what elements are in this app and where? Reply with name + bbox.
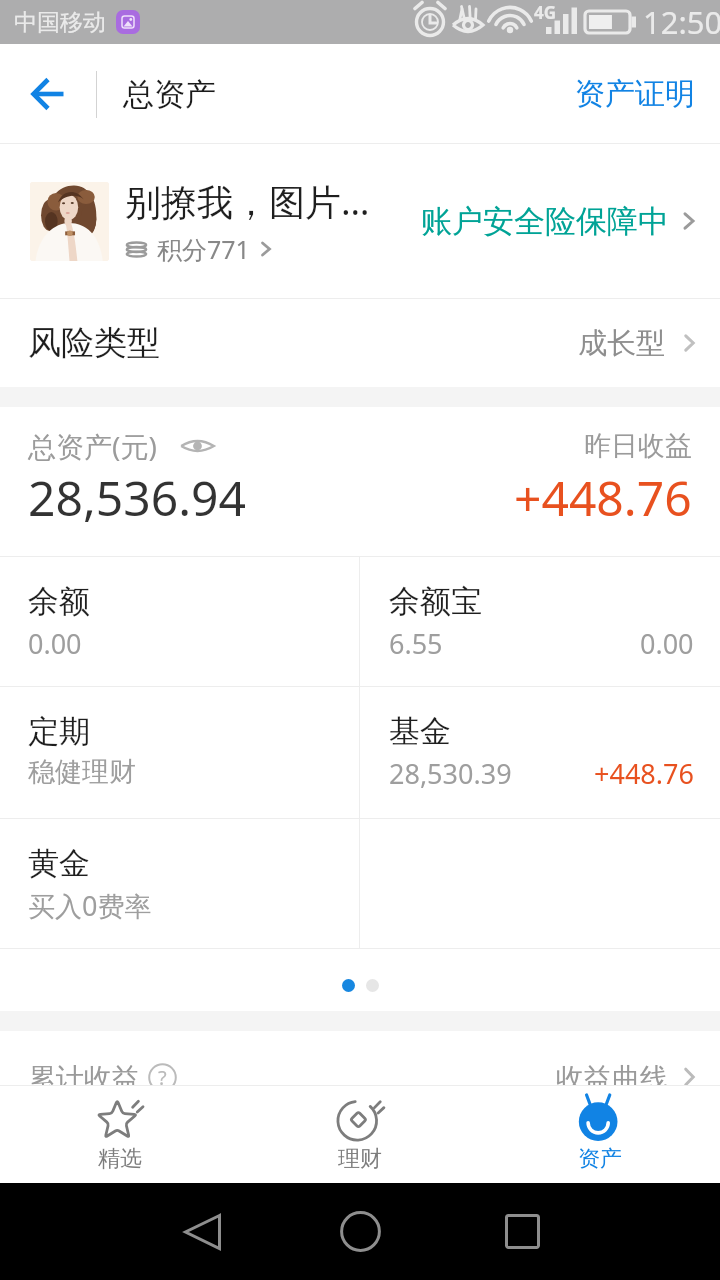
button[interactable]: 黄金 [0, 819, 359, 948]
button[interactable]: 基金 [360, 687, 720, 818]
button[interactable]: 资产证明 [555, 44, 720, 144]
staticText: 风险类型 [28, 322, 160, 364]
staticText: 累计收益 [28, 1061, 140, 1096]
staticText: 成长型 [578, 325, 665, 362]
button[interactable]: 余额 [0, 557, 359, 686]
staticText: ? [158, 1064, 167, 1091]
staticText: 理财 [338, 1145, 382, 1173]
staticText: 黄金 [28, 844, 90, 883]
staticText: 余额 [28, 582, 90, 621]
button[interactable]: Home [320, 1183, 400, 1280]
button[interactable]: 资产 [480, 1085, 720, 1183]
staticText: 0.00 [28, 625, 82, 662]
button[interactable]: 别撩我，图片… [0, 144, 720, 298]
button[interactable]: 余额宝 [360, 557, 720, 686]
staticText: 中国移动 [14, 8, 106, 37]
button[interactable]: 累计收益 [0, 1031, 720, 1121]
staticText: 账户安全险保障中 [421, 202, 669, 241]
button[interactable]: Recent apps [482, 1183, 562, 1280]
button[interactable]: Back [162, 1183, 242, 1280]
staticText: 昨日收益 [584, 429, 692, 463]
staticText: 积分771 [157, 232, 250, 266]
staticText: 28,530.39 [389, 755, 512, 792]
staticText: 精选 [98, 1145, 142, 1173]
staticText: 定期 [28, 712, 90, 751]
button[interactable]: 定期 [0, 687, 359, 818]
button[interactable]: Back [0, 44, 96, 144]
staticText: 总资产(元) [28, 427, 157, 465]
staticText: 稳健理财 [28, 755, 136, 789]
staticText: 28,536.94 [28, 465, 246, 530]
button[interactable]: Toggle balance visibility [179, 435, 216, 457]
staticText: 买入0费率 [28, 887, 152, 924]
staticText: 资产证明 [575, 75, 695, 113]
staticText: +448.76 [514, 465, 692, 530]
staticText: 12:50 [643, 1, 720, 43]
staticText: 收益曲线 [556, 1061, 668, 1096]
staticText: 4G [534, 1, 557, 24]
staticText: 基金 [389, 712, 451, 751]
staticText: 余额宝 [389, 582, 482, 621]
button[interactable]: 理财 [240, 1085, 480, 1183]
staticText: 总资产 [123, 75, 216, 114]
staticText: 6.55 [389, 625, 443, 662]
staticText: 别撩我，图片… [125, 177, 370, 226]
staticText: +448.76 [594, 755, 694, 792]
staticText: 资产 [578, 1145, 622, 1173]
button[interactable]: 精选 [0, 1085, 240, 1183]
staticText: 0.00 [640, 625, 694, 662]
button[interactable]: 风险类型 [0, 299, 720, 387]
